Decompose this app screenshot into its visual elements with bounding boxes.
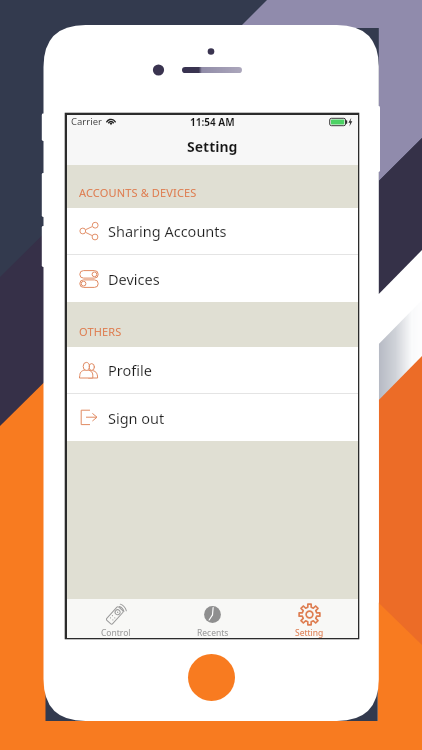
staticText: Sign out (108, 408, 165, 428)
staticText: ACCOUNTS & DEVICES (79, 185, 197, 200)
staticText: Control (101, 627, 131, 638)
staticText: OTHERS (79, 324, 122, 339)
button[interactable]: Control (67, 599, 164, 638)
staticText: Devices (108, 269, 160, 289)
staticText: Setting (187, 137, 238, 156)
button[interactable]: Profile (67, 347, 358, 393)
staticText: Carrier (71, 115, 102, 128)
button[interactable]: Setting (261, 599, 358, 638)
button[interactable]: Devices (67, 255, 358, 302)
button[interactable]: Sharing Accounts (67, 208, 358, 254)
button[interactable]: Recents (164, 599, 261, 638)
staticText: 11:54 AM (190, 115, 235, 128)
staticText: Profile (108, 360, 152, 380)
staticText: Sharing Accounts (108, 221, 227, 241)
staticText: Setting (295, 627, 324, 638)
staticText: Recents (197, 627, 229, 638)
button[interactable]: Sign out (67, 394, 358, 441)
